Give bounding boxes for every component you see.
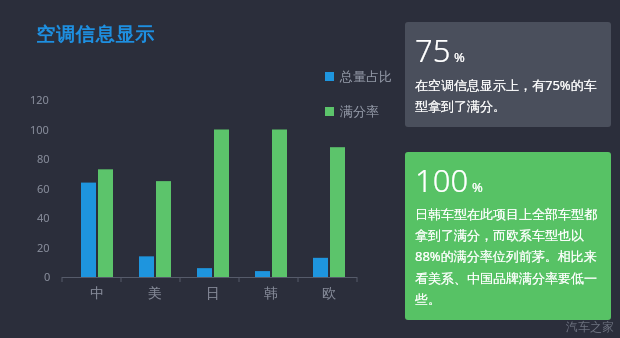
staticText: 60 bbox=[37, 181, 50, 196]
staticText: 40 bbox=[37, 210, 50, 225]
staticText: 中 bbox=[90, 285, 104, 303]
button[interactable]: 75 bbox=[405, 22, 611, 127]
staticText: 日 bbox=[206, 285, 220, 303]
staticText: 在空调信息显示上，有75%的车型拿到了满分。 bbox=[415, 76, 603, 115]
staticText: 80 bbox=[37, 151, 50, 166]
staticText: 0 bbox=[44, 269, 51, 284]
staticText: 汽车之家 bbox=[566, 319, 614, 334]
staticText: 120 bbox=[30, 92, 49, 107]
button[interactable]: 100 bbox=[405, 152, 611, 320]
button[interactable]: 总量占比 bbox=[325, 68, 392, 84]
staticText: % bbox=[472, 178, 483, 196]
staticText: 75 bbox=[415, 29, 451, 71]
staticText: 空调信息显示 bbox=[36, 23, 155, 47]
button[interactable]: 空调信息显示 bbox=[36, 23, 155, 47]
staticText: 100 bbox=[30, 122, 49, 137]
staticText: 日韩车型在此项目上全部车型都拿到了满分，而欧系车型也以88%的满分率位列前茅。相… bbox=[415, 206, 603, 308]
staticText: 20 bbox=[37, 240, 50, 255]
staticText: 美 bbox=[148, 285, 162, 303]
button[interactable]: 满分率 bbox=[325, 103, 379, 119]
staticText: 总量占比 bbox=[340, 68, 392, 84]
staticText: % bbox=[454, 48, 465, 66]
staticText: 欧 bbox=[322, 285, 336, 303]
staticText: 100 bbox=[415, 159, 469, 201]
staticText: 韩 bbox=[264, 285, 278, 303]
staticText: 满分率 bbox=[340, 103, 379, 119]
